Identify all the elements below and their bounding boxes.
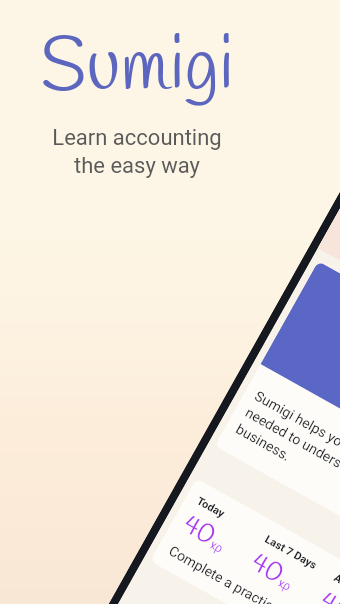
staticText: Last 7 Days (263, 533, 319, 572)
staticText: 40 (313, 584, 340, 604)
staticText: Sumigi (40, 20, 234, 119)
staticText: Learn accounting the easy way (52, 125, 222, 179)
staticText: xp (274, 574, 295, 597)
staticText: Today (195, 494, 227, 520)
staticText: xp (206, 536, 227, 559)
staticText: Complete a practice run to earn XP (166, 542, 340, 604)
staticText: 40 (176, 508, 222, 555)
staticText: All Time (331, 571, 340, 603)
staticText: Sumigi helps you learn the accounting ne… (233, 388, 340, 551)
staticText: 40 (244, 546, 290, 593)
